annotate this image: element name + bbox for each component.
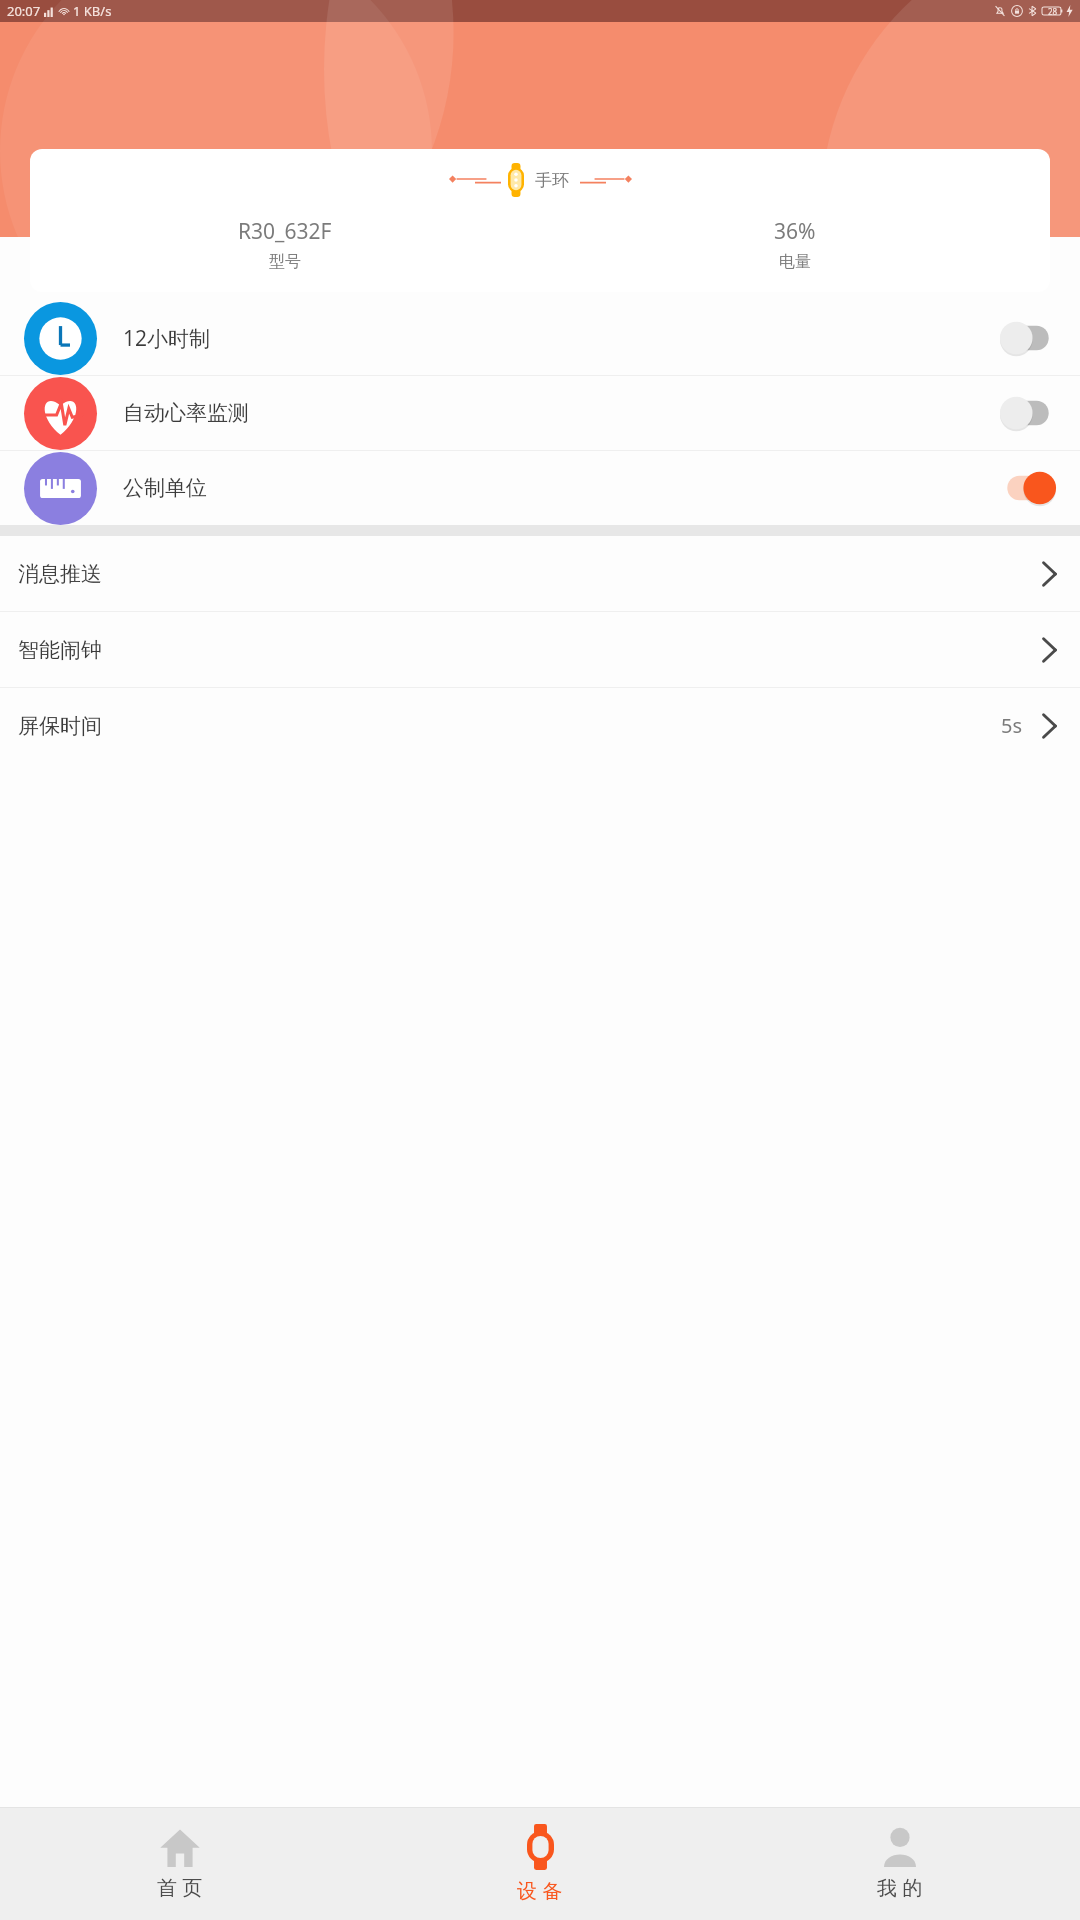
staticText: 消息推送	[18, 561, 102, 587]
staticText: 5s	[1001, 712, 1023, 739]
button[interactable]: 自动心率监测	[0, 376, 1080, 450]
staticText: 电量	[779, 252, 811, 272]
button[interactable]: 手环	[30, 149, 1050, 292]
staticText: 自动心率监测	[123, 400, 249, 426]
button[interactable]: 12小时制	[0, 301, 1080, 375]
staticText: 36%	[774, 217, 816, 246]
button[interactable]: Home	[0, 1808, 360, 1920]
staticText: R30_632F	[238, 217, 332, 246]
button[interactable]: Device	[360, 1808, 720, 1920]
button[interactable]: 智能闹钟	[0, 612, 1080, 687]
staticText: 手环	[535, 170, 569, 191]
staticText: 12小时制	[123, 324, 211, 353]
staticText: 公制单位	[123, 475, 207, 501]
button[interactable]: Profile	[720, 1808, 1080, 1920]
staticText: 1 KB/s	[73, 2, 112, 20]
staticText: 我 的	[877, 1874, 923, 1901]
staticText: 设 备	[517, 1877, 563, 1904]
staticText: 型号	[269, 252, 301, 272]
button[interactable]: Off	[1000, 396, 1056, 430]
button[interactable]: 屏保时间	[0, 688, 1080, 763]
other: Home	[159, 1827, 201, 1867]
staticText: 智能闹钟	[18, 637, 102, 663]
button[interactable]: 消息推送	[0, 536, 1080, 611]
staticText: 28	[1048, 6, 1058, 17]
button[interactable]: Off	[1000, 321, 1056, 355]
staticText: 20:07	[7, 2, 41, 20]
other: Profile	[880, 1827, 920, 1867]
button[interactable]: 公制单位	[0, 451, 1080, 525]
other: Device	[527, 1824, 554, 1870]
button[interactable]: On	[1000, 471, 1056, 505]
staticText: 首 页	[157, 1874, 203, 1901]
staticText: 屏保时间	[18, 713, 102, 739]
